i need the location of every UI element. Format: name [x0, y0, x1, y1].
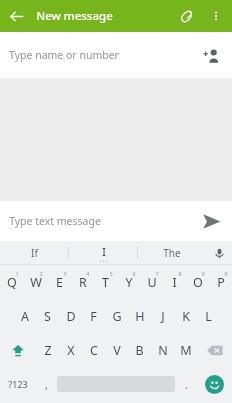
staticText: 3 [63, 270, 67, 277]
staticText: Y [125, 274, 133, 291]
staticText: W [30, 274, 42, 291]
staticText: Type name or number [9, 48, 119, 62]
staticText: X [67, 342, 75, 359]
button[interactable]: Emoji [197, 367, 232, 401]
staticText: I [102, 245, 106, 259]
staticText: ?123 [8, 378, 28, 390]
button[interactable]: Add contact [198, 42, 224, 68]
button[interactable]: I [69, 241, 137, 265]
button[interactable]: Z [36, 333, 59, 367]
staticText: P [217, 274, 225, 291]
staticText: 6 [132, 270, 136, 277]
button[interactable]: X [59, 333, 82, 367]
staticText: Z [44, 342, 52, 359]
staticText: 2 [39, 270, 43, 277]
staticText: Type text message [9, 214, 101, 228]
button[interactable]: A [13, 299, 36, 333]
button[interactable]: Comma [35, 367, 57, 401]
staticText: U [147, 274, 157, 291]
button[interactable]: Back [0, 0, 32, 32]
staticText: R [79, 274, 87, 291]
button[interactable]: M [174, 333, 197, 367]
button[interactable]: F [82, 299, 105, 333]
staticText: . [185, 377, 188, 392]
staticText: T [102, 274, 109, 291]
button[interactable]: L [197, 299, 220, 333]
button[interactable]: I [163, 265, 186, 299]
button[interactable]: If [0, 241, 68, 265]
staticText: S [44, 308, 51, 325]
button[interactable]: ?123 [0, 367, 35, 401]
button[interactable]: Q [0, 265, 24, 299]
button[interactable]: K [174, 299, 197, 333]
button[interactable]: H [128, 299, 151, 333]
staticText: 4 [86, 270, 90, 277]
staticText: The [163, 246, 181, 260]
button[interactable]: B [128, 333, 151, 367]
staticText: K [182, 308, 190, 325]
staticText: 7 [155, 270, 159, 277]
button[interactable]: O [186, 265, 209, 299]
button[interactable]: Type name or number [0, 32, 232, 78]
button[interactable]: D [59, 299, 82, 333]
staticText: 5 [109, 270, 113, 277]
button[interactable]: Voice input [206, 241, 232, 265]
staticText: H [135, 308, 145, 325]
button[interactable]: V [105, 333, 128, 367]
staticText: O [193, 274, 203, 291]
staticText: G [112, 308, 122, 325]
button[interactable]: Shift [0, 333, 36, 367]
staticText: N [158, 342, 168, 359]
button[interactable]: N [151, 333, 174, 367]
staticText: F [90, 308, 97, 325]
button[interactable]: U [140, 265, 163, 299]
staticText: If [31, 246, 38, 260]
staticText: C [90, 342, 98, 359]
staticText: E [56, 274, 63, 291]
button[interactable]: Period [175, 367, 197, 401]
button[interactable]: Attach [171, 0, 203, 32]
staticText: A [21, 308, 29, 325]
button[interactable]: P [209, 265, 232, 299]
staticText: New message [36, 8, 113, 24]
button[interactable]: Y [117, 265, 140, 299]
staticText: B [135, 342, 144, 359]
button[interactable]: G [105, 299, 128, 333]
button[interactable]: S [36, 299, 59, 333]
staticText: 0 [224, 270, 228, 277]
button[interactable]: The [138, 241, 206, 265]
staticText: 9 [201, 270, 205, 277]
staticText: J [161, 308, 165, 325]
button[interactable]: More options [203, 3, 229, 29]
staticText: M [180, 342, 192, 359]
staticText: 1 [15, 270, 19, 277]
staticText: 8 [178, 270, 182, 277]
button[interactable]: T [94, 265, 117, 299]
staticText: I [172, 274, 177, 291]
staticText: Q [7, 274, 17, 291]
button[interactable]: Backspace [197, 333, 232, 367]
staticText: V [113, 342, 121, 359]
button[interactable]: Type text message [0, 201, 232, 241]
staticText: D [66, 308, 76, 325]
button[interactable]: J [151, 299, 174, 333]
staticText: L [205, 308, 212, 325]
button[interactable]: C [82, 333, 105, 367]
button[interactable]: E [48, 265, 71, 299]
button[interactable]: W [24, 265, 48, 299]
button[interactable]: Send [197, 207, 225, 235]
staticText: , [45, 377, 48, 392]
button[interactable]: R [71, 265, 94, 299]
